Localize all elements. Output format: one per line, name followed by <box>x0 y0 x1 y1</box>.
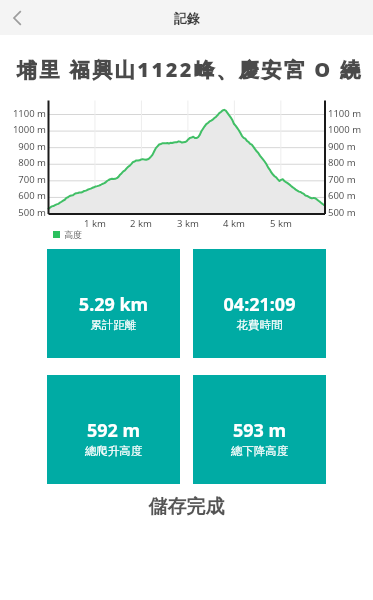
staticText: 總爬升高度 <box>47 444 180 458</box>
staticText: 600 m <box>328 189 356 202</box>
staticText: 5 km <box>263 217 299 230</box>
staticText: 800 m <box>0 156 46 169</box>
staticText: 1100 m <box>0 107 46 120</box>
staticText: 1000 m <box>328 123 362 136</box>
button[interactable]: Back <box>0 0 36 35</box>
staticText: 1000 m <box>0 123 46 136</box>
staticText: 記錄 <box>174 10 200 26</box>
staticText: 900 m <box>328 140 356 153</box>
staticText: 04:21:09 <box>193 292 326 317</box>
staticText: 累計距離 <box>47 318 180 332</box>
staticText: 700 m <box>328 173 356 186</box>
staticText: 1 km <box>77 217 113 230</box>
staticText: 3 km <box>170 217 206 230</box>
staticText: 儲存完成 <box>0 495 373 519</box>
staticText: 593 m <box>193 418 326 443</box>
staticText: 700 m <box>0 173 46 186</box>
staticText: 900 m <box>0 140 46 153</box>
staticText: 5.29 km <box>47 292 180 317</box>
staticText: 花費時間 <box>193 318 326 332</box>
staticText: 800 m <box>328 156 356 169</box>
staticText: 高度 <box>64 229 82 240</box>
staticText: 500 m <box>328 206 356 219</box>
staticText: 4 km <box>216 217 252 230</box>
staticText: 2 km <box>123 217 159 230</box>
button[interactable]: 592 m <box>47 375 180 484</box>
staticText: 592 m <box>47 418 180 443</box>
button[interactable]: 5.29 km <box>47 249 180 358</box>
staticText: 埔里 福興山1122峰、慶安宮 O 繞 <box>17 56 363 83</box>
staticText: 總下降高度 <box>193 444 326 458</box>
button[interactable]: 04:21:09 <box>193 249 326 358</box>
button[interactable]: 593 m <box>193 375 326 484</box>
staticText: 600 m <box>0 189 46 202</box>
staticText: 1100 m <box>328 107 362 120</box>
staticText: 500 m <box>0 206 46 219</box>
